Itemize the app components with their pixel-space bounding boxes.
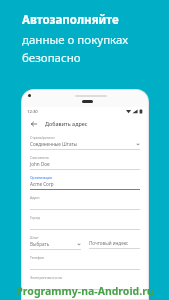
staticText: Соискатель xyxy=(30,155,49,160)
button[interactable]: Почтовый индекс xyxy=(89,235,140,254)
staticText: данные о покупках xyxy=(22,32,129,48)
button[interactable]: Назад xyxy=(28,118,39,129)
staticText: Соединенные Штаты xyxy=(30,141,78,147)
button[interactable]: Адрес xyxy=(30,195,140,215)
button[interactable]: Штат xyxy=(30,235,81,255)
button[interactable]: Организация xyxy=(30,175,140,195)
staticText: Acme Corp xyxy=(30,181,54,187)
staticText: Город xyxy=(30,215,40,220)
staticText: John Doe xyxy=(30,161,50,167)
button[interactable]: Страна/регион xyxy=(30,135,140,155)
staticText: Адрес xyxy=(30,195,40,200)
staticText: Выбрать xyxy=(30,241,50,247)
staticText: Штат xyxy=(30,235,39,240)
button[interactable]: Электронная почта xyxy=(30,275,140,295)
staticText: безопасно xyxy=(22,50,81,66)
staticText: Организация xyxy=(30,175,52,180)
staticText: Почтовый индекс xyxy=(89,240,129,246)
staticText: 12:30 xyxy=(27,109,38,115)
staticText: Programmy-na-Android.ru xyxy=(16,284,154,298)
button[interactable]: Соискатель xyxy=(30,155,140,175)
staticText: Электронная почта xyxy=(30,275,62,280)
staticText: Автозаполняйте xyxy=(22,12,119,28)
staticText: Страна/регион xyxy=(30,135,55,140)
button[interactable]: Телефон xyxy=(30,255,140,275)
staticText: Добавить адрес xyxy=(45,120,88,127)
button[interactable]: Город xyxy=(30,215,140,235)
staticText: Телефон xyxy=(30,255,45,260)
